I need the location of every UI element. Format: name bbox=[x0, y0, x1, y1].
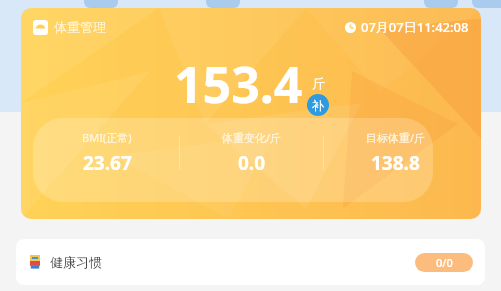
other: Weight scale bbox=[33, 20, 48, 35]
button[interactable]: BMI(正常) bbox=[35, 130, 179, 176]
button[interactable]: 目标体重/斤 bbox=[324, 130, 467, 176]
button[interactable]: 健康习惯 bbox=[16, 239, 485, 285]
other: Time bbox=[345, 22, 356, 33]
staticText: 斤 bbox=[312, 75, 325, 91]
staticText: 补 bbox=[312, 98, 324, 113]
staticText: 07月07日11:42:08 bbox=[361, 18, 469, 36]
staticText: 0/0 bbox=[436, 255, 453, 270]
button[interactable]: 体重变化/斤 bbox=[180, 130, 323, 176]
staticText: 138.8 bbox=[371, 150, 420, 176]
button[interactable]: 补 bbox=[307, 94, 329, 116]
staticText: 0.0 bbox=[238, 150, 266, 176]
staticText: 23.67 bbox=[83, 150, 132, 176]
staticText: 体重管理 bbox=[54, 19, 106, 35]
staticText: BMI(正常) bbox=[82, 130, 132, 145]
staticText: 健康习惯 bbox=[50, 254, 102, 270]
staticText: 目标体重/斤 bbox=[366, 130, 426, 145]
button[interactable]: 0/0 bbox=[415, 253, 473, 272]
button[interactable]: Weight scale bbox=[21, 8, 481, 219]
staticText: 体重变化/斤 bbox=[222, 130, 282, 145]
staticText: 153.4 bbox=[174, 50, 303, 118]
